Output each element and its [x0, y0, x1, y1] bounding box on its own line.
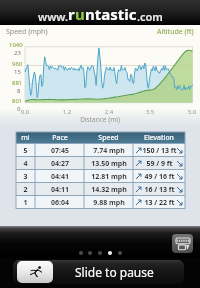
staticText: 0 — [17, 105, 21, 113]
staticText: 49 / 16 ft — [144, 172, 175, 182]
staticText: Speed (mph) — [6, 27, 48, 37]
staticText: www. — [38, 9, 68, 24]
staticText: 2 — [23, 185, 28, 195]
staticText: 1 — [23, 198, 28, 208]
staticText: 801 — [12, 97, 23, 105]
staticText: Elevation — [144, 133, 174, 143]
staticText: r — [68, 4, 75, 24]
button[interactable]: Hide keyboard — [172, 234, 193, 253]
button[interactable]: 1 — [16, 196, 185, 209]
staticText: Speed — [98, 133, 119, 143]
staticText: 150 / 13 ft — [142, 146, 177, 156]
staticText: 06:04 — [51, 198, 69, 208]
staticText: 0.0 — [18, 108, 32, 116]
staticText: ntastic — [85, 4, 137, 24]
button[interactable]: Slide to pause — [13, 260, 184, 284]
button[interactable]: 3 — [16, 170, 185, 183]
staticText: Distance (mi) — [0, 115, 200, 124]
staticText: Pace — [52, 133, 68, 143]
staticText: 07:45 — [51, 146, 69, 156]
staticText: Slide to pause — [75, 264, 154, 280]
staticText: .com — [137, 9, 163, 24]
staticText: u — [75, 4, 85, 24]
staticText: 9.88 mph — [93, 198, 125, 208]
staticText: Altitude (ft) — [157, 27, 194, 37]
button[interactable]: 5 — [16, 144, 185, 157]
staticText: 16 / 13 ft — [144, 185, 175, 195]
staticText: 8 — [17, 87, 21, 95]
staticText: 13.50 mph — [91, 159, 127, 169]
staticText: 15 — [14, 68, 21, 76]
button[interactable]: 2 — [16, 183, 185, 196]
button[interactable]: 4 — [16, 157, 185, 170]
staticText: 4 — [23, 159, 28, 169]
staticText: 13 / 22 ft — [144, 198, 175, 208]
staticText: 2.4 — [102, 108, 116, 116]
staticText: 960 — [12, 60, 23, 68]
staticText: 3.5 — [143, 108, 157, 116]
staticText: 04:27 — [51, 159, 69, 169]
staticText: 04:11 — [51, 185, 69, 195]
staticText: 12.81 mph — [91, 172, 127, 182]
staticText: 881 — [12, 79, 23, 87]
staticText: 23 — [14, 49, 21, 57]
staticText: 5 — [23, 146, 28, 156]
staticText: 5.0 — [185, 108, 199, 116]
staticText: 59 / 9 ft — [146, 159, 173, 169]
button[interactable]: Pause — [17, 261, 53, 283]
staticText: 1.2 — [60, 108, 74, 116]
staticText: 7.74 mph — [93, 146, 125, 156]
staticText: 04:41 — [51, 172, 69, 182]
staticText: 1040 — [9, 41, 23, 49]
staticText: 14.32 mph — [91, 185, 127, 195]
staticText: 3 — [23, 172, 28, 182]
staticText: mi — [21, 133, 30, 143]
